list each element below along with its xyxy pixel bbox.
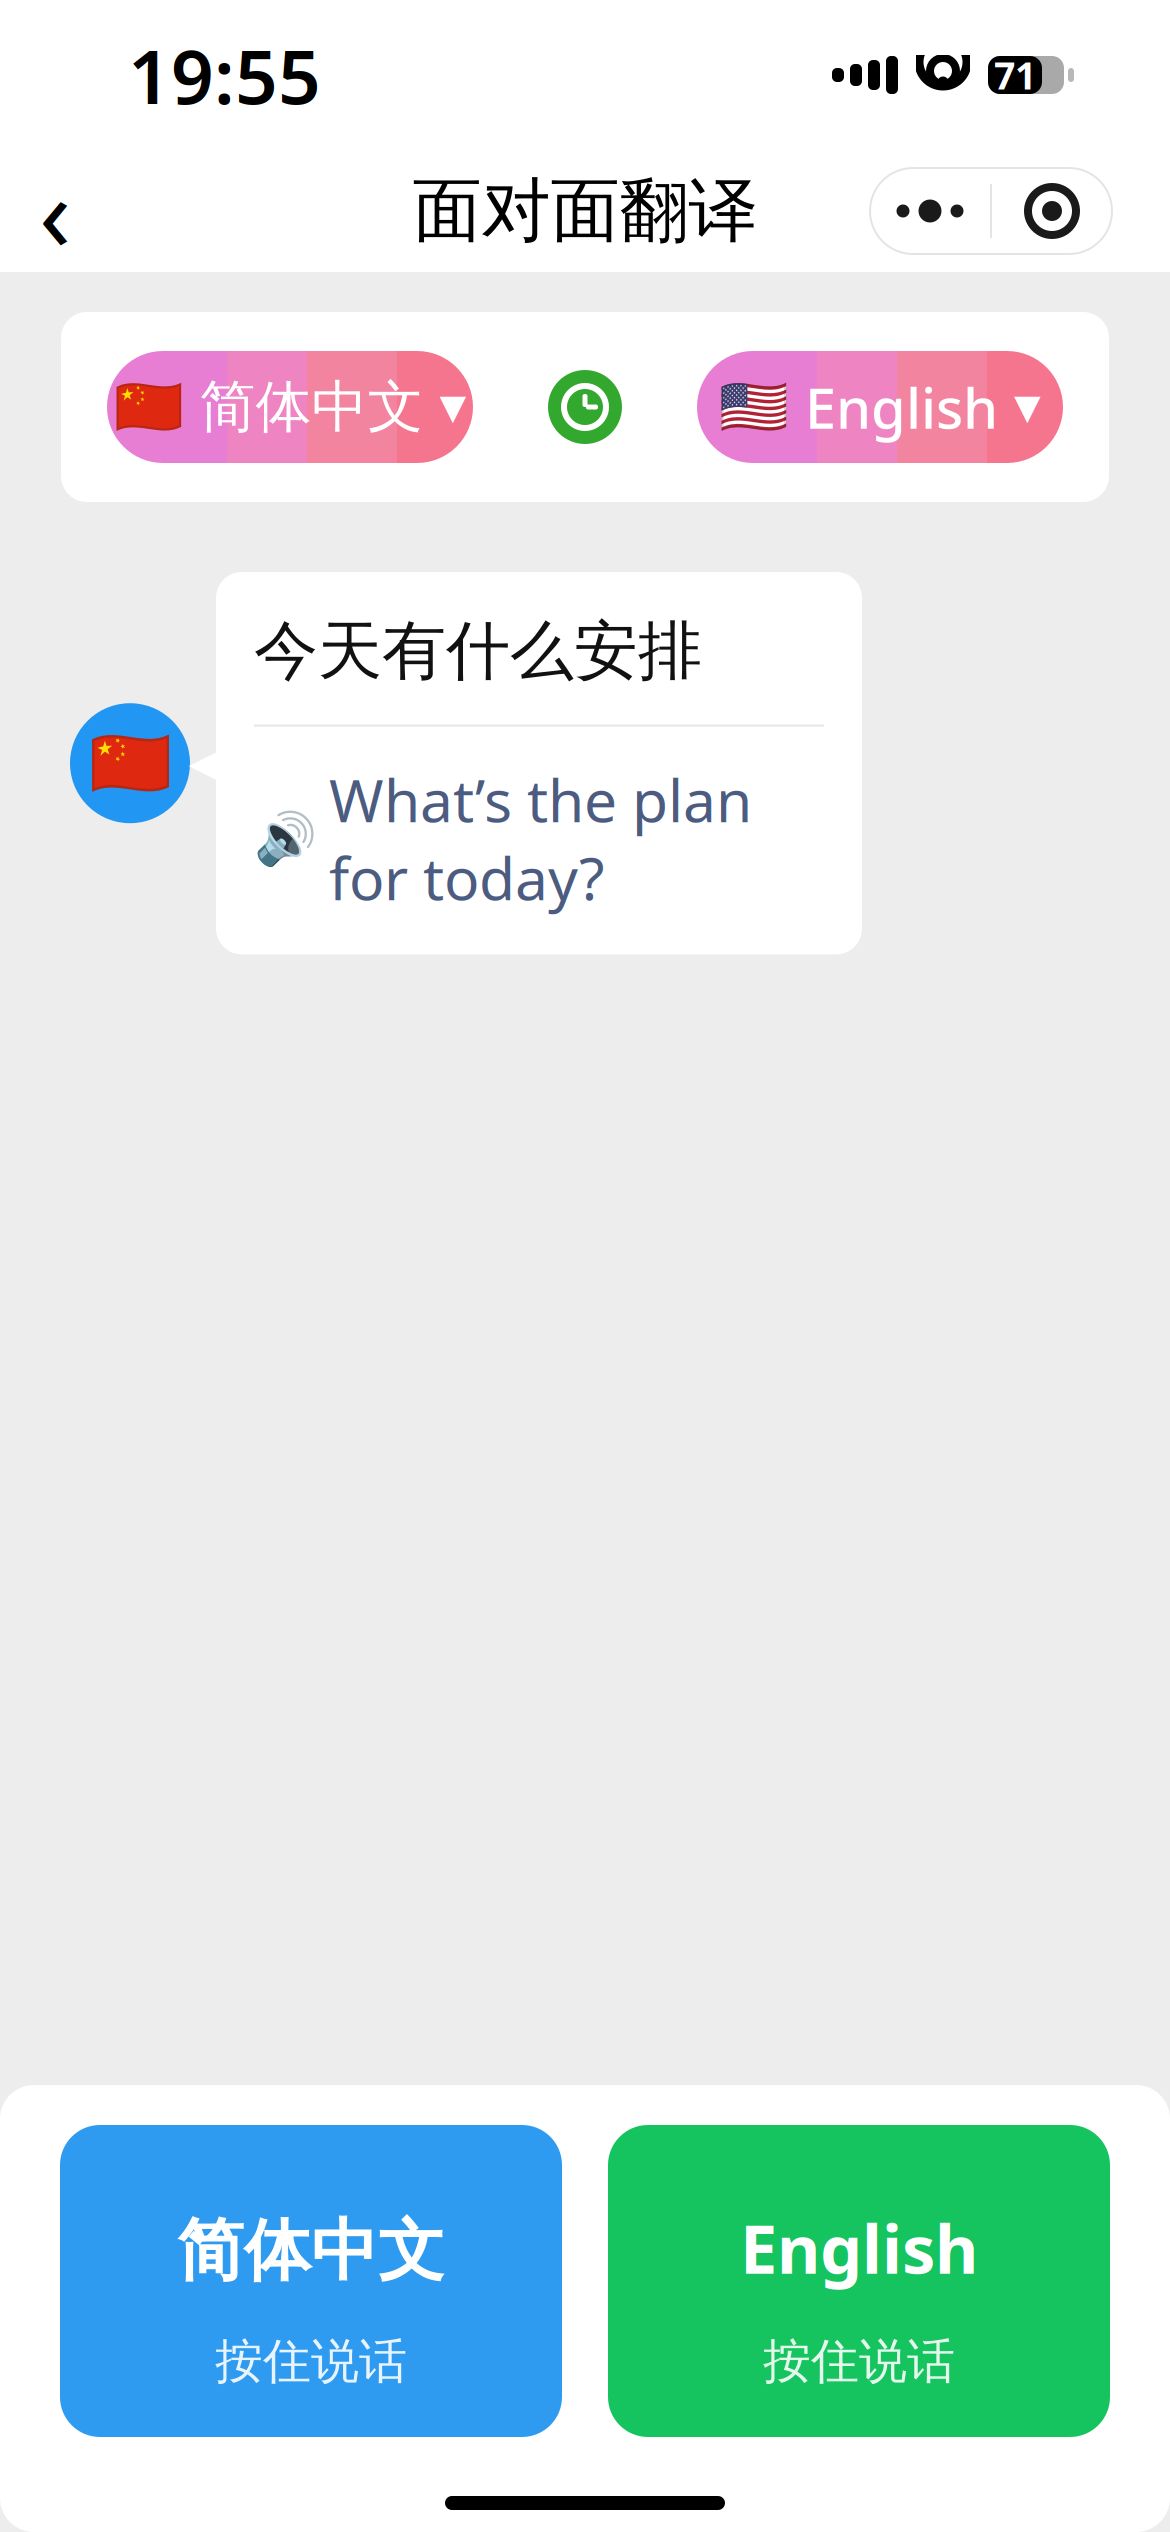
staticText: English — [740, 2203, 978, 2292]
button[interactable]: English — [608, 2125, 1110, 2437]
staticText: 🇨🇳 — [113, 375, 183, 439]
button[interactable]: Close — [992, 168, 1112, 254]
staticText: ‹ — [39, 142, 71, 280]
staticText: English — [805, 370, 998, 444]
staticText: What’s the plan for today? — [329, 761, 752, 916]
staticText: ◀ — [188, 731, 229, 792]
staticText: 按住说话 — [763, 2332, 955, 2391]
button[interactable]: Back — [0, 156, 110, 266]
staticText: 🇨🇳 — [88, 725, 171, 801]
staticText: 🇺🇸 — [719, 375, 789, 439]
button[interactable]: More — [870, 168, 990, 254]
staticText: 按住说话 — [215, 2332, 407, 2391]
staticText: ▼ — [439, 387, 466, 427]
staticText: 面对面翻译 — [412, 168, 757, 254]
button[interactable]: History — [548, 370, 622, 444]
staticText: 今天有什么安排 — [254, 612, 702, 691]
staticText: 🔊 — [254, 810, 317, 867]
button[interactable]: 今天有什么安排 — [216, 572, 862, 954]
staticText: 简体中文 — [199, 373, 423, 441]
button[interactable]: 🇺🇸 — [697, 351, 1063, 463]
staticText: 19:55 — [128, 25, 321, 125]
staticText: 71 — [994, 50, 1036, 100]
button[interactable]: 简体中文 — [60, 2125, 562, 2437]
staticText: ▼ — [1014, 387, 1041, 427]
button[interactable]: 🇨🇳 — [107, 351, 473, 463]
staticText: 简体中文 — [177, 2210, 445, 2292]
